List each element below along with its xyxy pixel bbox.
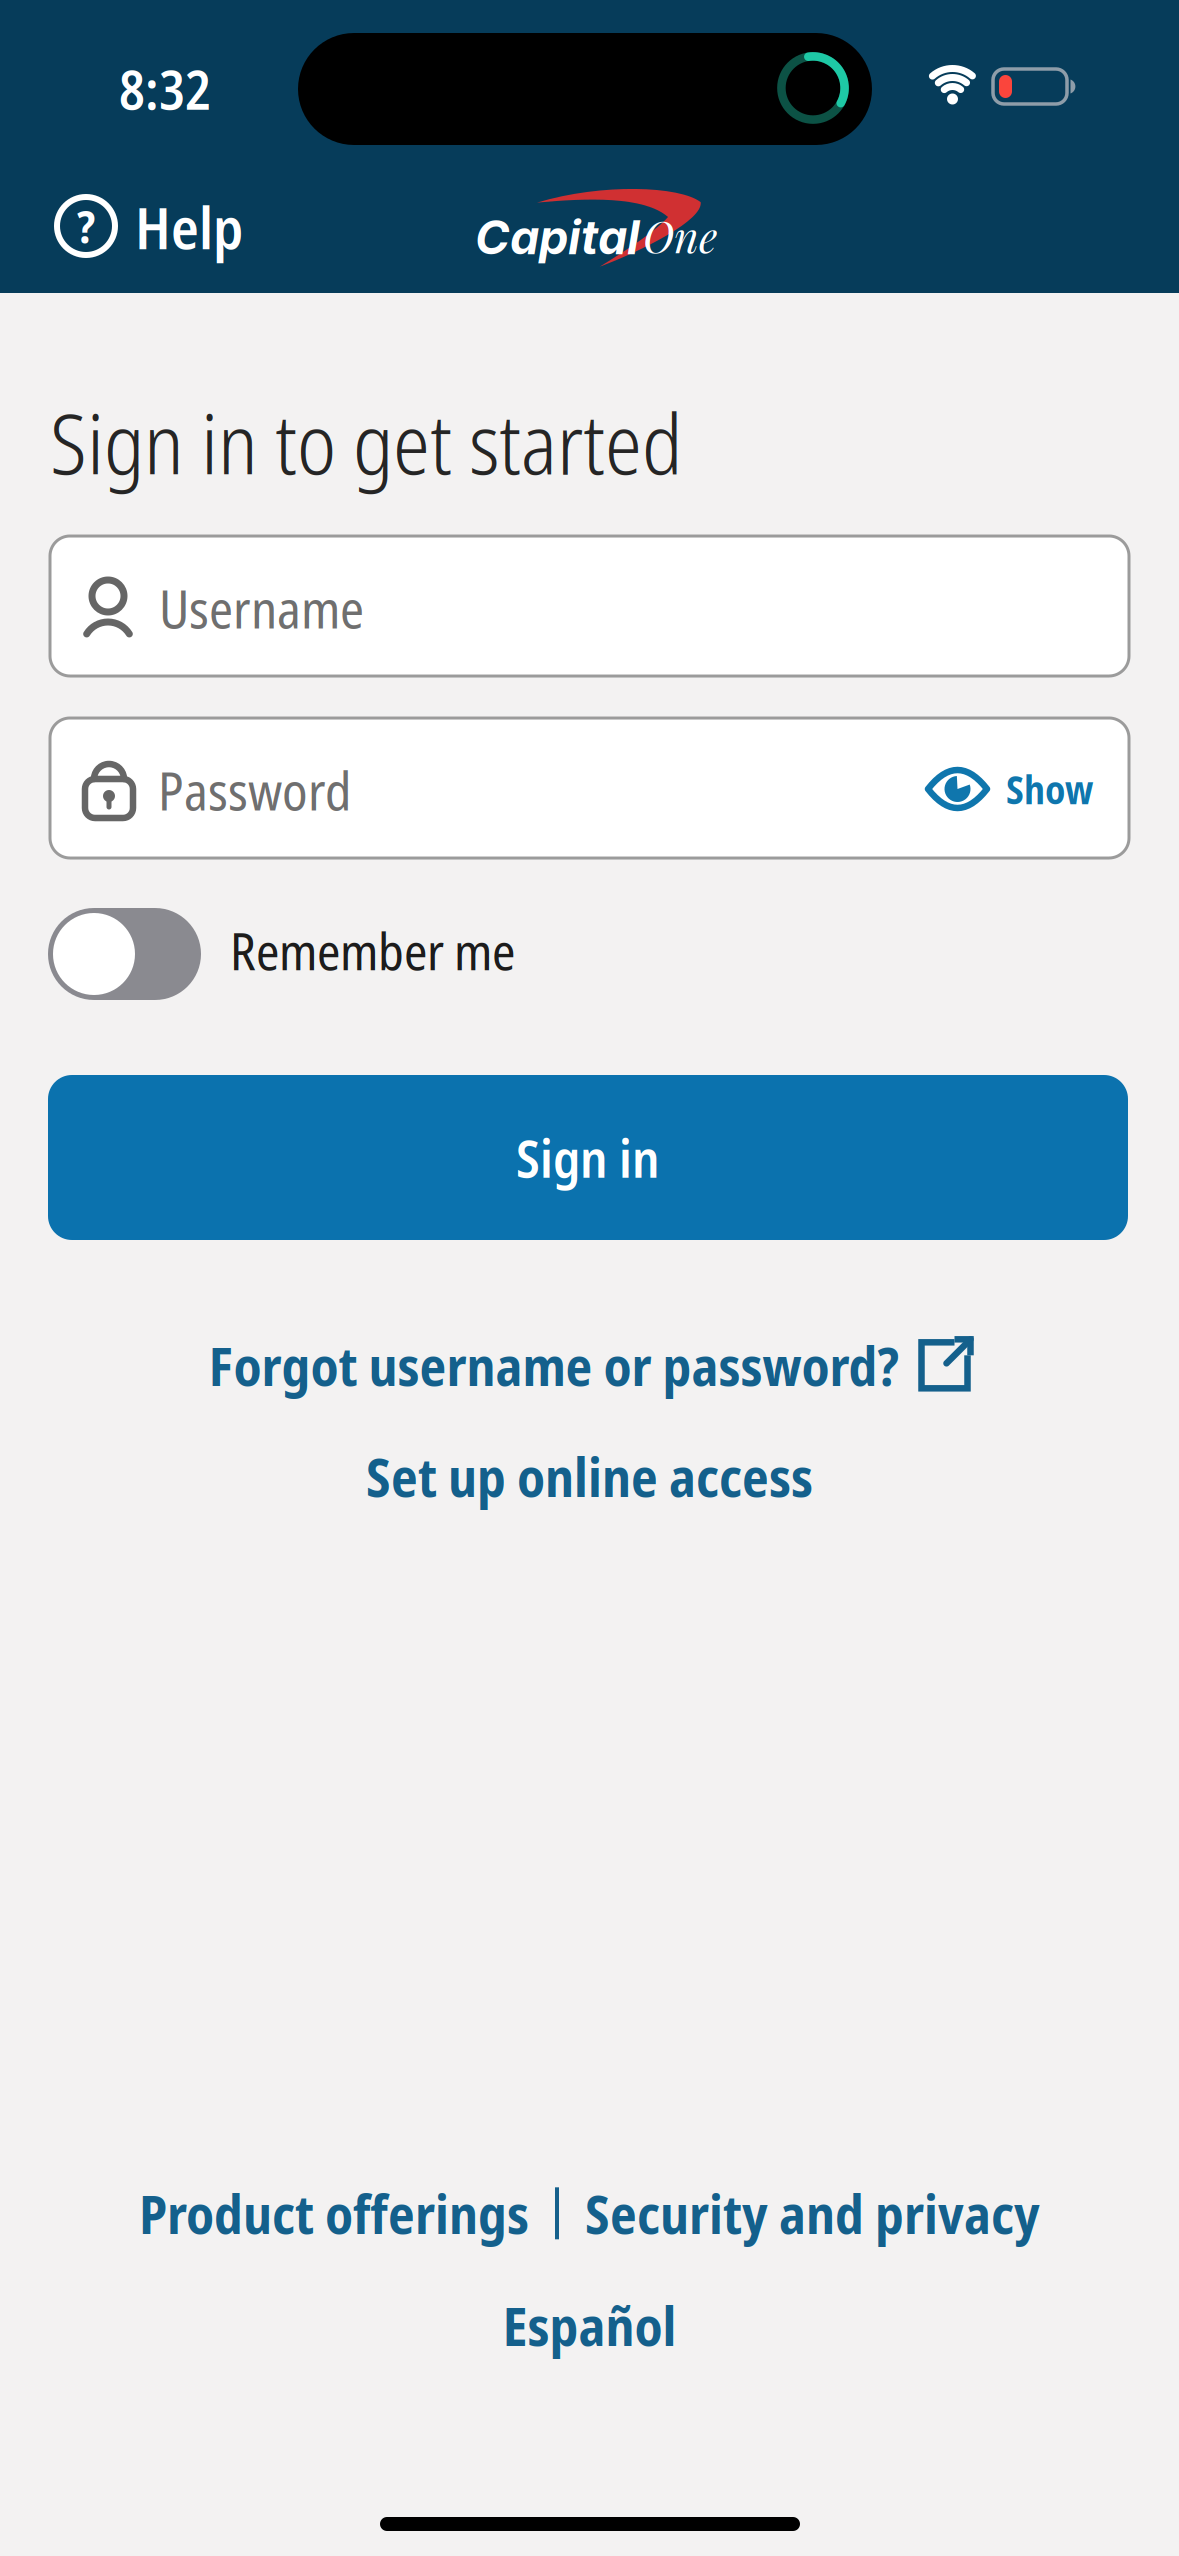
staticText: Security and privacy (585, 2177, 1040, 2250)
staticText: Username (159, 573, 364, 644)
staticText: Español (502, 2289, 676, 2362)
staticText: Remember me (230, 916, 515, 985)
staticText: ? (77, 195, 95, 257)
staticText: Password (158, 755, 351, 826)
staticText: Help (135, 188, 243, 266)
staticText: 8:32 (119, 53, 211, 125)
staticText: Show (1006, 763, 1093, 816)
staticText: One (643, 207, 717, 264)
staticText: Forgot username or password? (208, 1329, 898, 1402)
staticText: Sign in (516, 1122, 660, 1193)
staticText: Capital (475, 209, 640, 265)
staticText: Set up online access (366, 1440, 813, 1513)
staticText: Sign in to get started (50, 386, 683, 499)
staticText: Product offerings (139, 2177, 529, 2250)
